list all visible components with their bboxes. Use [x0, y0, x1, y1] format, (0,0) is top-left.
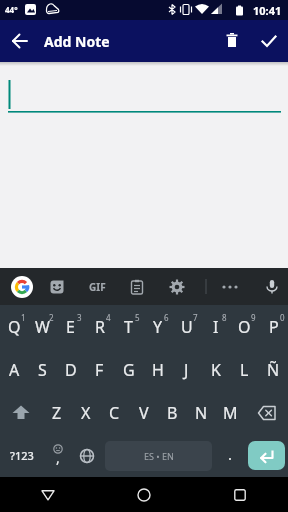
staticText: 44° [5, 4, 18, 15]
staticText: 7 [193, 312, 198, 323]
staticText: B [167, 402, 178, 424]
button[interactable]: , [43, 434, 72, 477]
staticText: 4 [106, 312, 111, 323]
staticText: E [66, 316, 75, 338]
staticText: 6 [164, 312, 169, 323]
staticText: 1 [21, 312, 26, 323]
button[interactable]: T [114, 305, 143, 348]
staticText: , [56, 448, 60, 467]
button[interactable]: Ñ [259, 348, 288, 391]
button[interactable]: M [216, 391, 245, 434]
button[interactable] [0, 477, 96, 512]
staticText: D [65, 359, 77, 381]
button[interactable]: Z [42, 391, 71, 434]
button[interactable]: H [143, 348, 172, 391]
staticText: 0 [280, 312, 285, 323]
staticText: L [240, 359, 249, 381]
staticText: U [181, 316, 193, 338]
button[interactable]: G [114, 348, 143, 391]
button[interactable]: O [230, 305, 259, 348]
staticText: Add Note [44, 32, 110, 51]
staticText: C [109, 402, 120, 424]
button[interactable] [0, 391, 42, 434]
staticText: ?123 [10, 448, 34, 463]
staticText: K [211, 359, 221, 381]
staticText: P [269, 316, 279, 338]
staticText: R [95, 316, 105, 338]
button[interactable]: Y [143, 305, 172, 348]
button[interactable]: GIF [81, 271, 113, 303]
staticText: G [123, 359, 135, 381]
staticText: ES • EN [144, 450, 174, 462]
button[interactable] [41, 271, 73, 303]
button[interactable]: C [100, 391, 129, 434]
button[interactable]: X [71, 391, 100, 434]
staticText: . [228, 444, 233, 464]
button[interactable]: P [259, 305, 288, 348]
staticText: J [184, 359, 189, 381]
staticText: Z [52, 402, 62, 424]
button[interactable] [161, 271, 193, 303]
button[interactable]: I [201, 305, 230, 348]
button[interactable]: S [28, 348, 56, 391]
button[interactable]: E [56, 305, 85, 348]
staticText: S [38, 359, 47, 381]
staticText: F [95, 359, 104, 381]
staticText: 8 [222, 312, 227, 323]
button[interactable] [121, 271, 153, 303]
staticText: 9 [251, 312, 256, 323]
staticText: A [9, 359, 20, 381]
staticText: I [213, 316, 219, 338]
button[interactable] [214, 20, 250, 62]
staticText: 10:41 [253, 3, 282, 18]
staticText: Y [153, 316, 163, 338]
button[interactable]: D [56, 348, 85, 391]
button[interactable]: N [187, 391, 216, 434]
button[interactable] [72, 434, 101, 477]
button[interactable]: . [216, 434, 245, 477]
button[interactable]: A [0, 348, 28, 391]
button[interactable] [214, 271, 246, 303]
staticText: 5 [135, 312, 140, 323]
button[interactable] [256, 271, 288, 303]
button[interactable] [192, 477, 288, 512]
staticText: N [195, 402, 208, 424]
button[interactable]: ES • EN [101, 434, 216, 477]
staticText: M [223, 402, 238, 424]
button[interactable]: J [172, 348, 201, 391]
staticText: 3 [77, 312, 82, 323]
button[interactable]: K [201, 348, 230, 391]
staticText: Q [8, 316, 21, 338]
button[interactable] [245, 434, 288, 477]
button[interactable]: U [172, 305, 201, 348]
button[interactable]: ?123 [0, 434, 43, 477]
button[interactable]: V [129, 391, 158, 434]
staticText: W [35, 316, 50, 338]
button[interactable] [0, 20, 40, 62]
staticText: X [81, 402, 91, 424]
staticText: 2 [49, 312, 54, 323]
button[interactable]: B [158, 391, 187, 434]
staticText: Ñ [267, 359, 280, 381]
button[interactable] [250, 20, 288, 62]
button[interactable]: L [230, 348, 259, 391]
staticText: GIF [89, 280, 106, 294]
button[interactable]: W [28, 305, 56, 348]
button[interactable] [96, 477, 192, 512]
button[interactable]: Q [0, 305, 28, 348]
button[interactable] [6, 271, 38, 303]
staticText: T [124, 316, 133, 338]
button[interactable] [245, 391, 288, 434]
staticText: O [238, 316, 251, 338]
button[interactable]: F [85, 348, 114, 391]
staticText: H [152, 359, 164, 381]
staticText: V [139, 402, 149, 424]
button[interactable]: R [85, 305, 114, 348]
